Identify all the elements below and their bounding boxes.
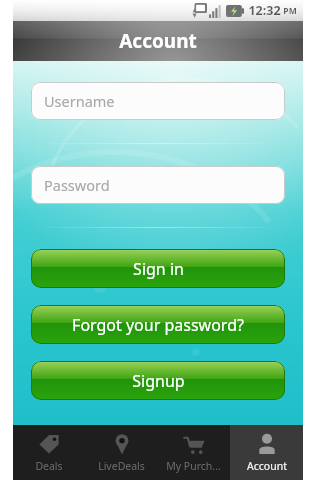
button[interactable]: Signup <box>31 361 285 400</box>
button[interactable]: Account <box>230 425 303 480</box>
button[interactable]: Sign in <box>31 249 285 288</box>
button[interactable]: Forgot your password? <box>31 305 285 344</box>
button[interactable]: Username <box>31 82 285 120</box>
staticText: PM <box>283 5 297 17</box>
button[interactable]: LiveDeals <box>85 425 157 480</box>
staticText: Account <box>247 459 287 473</box>
staticText: Deals <box>35 459 63 473</box>
button[interactable]: Password <box>31 166 285 204</box>
staticText: My Purch... <box>166 459 221 473</box>
staticText: Password <box>44 175 110 195</box>
staticText: LiveDeals <box>98 459 145 473</box>
staticText: 12:32 <box>248 2 281 19</box>
staticText: Username <box>44 91 115 111</box>
button[interactable]: My Purch... <box>157 425 230 480</box>
staticText: Sign in <box>133 258 184 280</box>
staticText: Account <box>119 28 197 54</box>
button[interactable]: Deals <box>13 425 85 480</box>
staticText: Signup <box>132 370 185 392</box>
staticText: Forgot your password? <box>72 314 244 336</box>
